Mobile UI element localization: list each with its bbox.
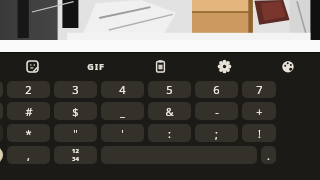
button[interactable]: " xyxy=(54,124,97,142)
button[interactable]: 3 xyxy=(54,81,97,98)
button[interactable]: ! xyxy=(242,124,276,142)
button[interactable]: 2 xyxy=(7,81,50,98)
button[interactable]: ; xyxy=(195,124,238,142)
staticText: _ xyxy=(120,104,125,119)
button[interactable]: 5 xyxy=(148,81,191,98)
staticText: 3 xyxy=(72,82,79,97)
button[interactable]: Language xyxy=(0,146,3,164)
button[interactable]: , xyxy=(7,146,50,164)
button[interactable]: _ xyxy=(101,102,144,120)
staticText: 2 xyxy=(25,82,32,97)
staticText: 34 xyxy=(72,155,79,163)
button[interactable]: 6 xyxy=(195,81,238,98)
button[interactable]: + xyxy=(242,102,276,120)
button[interactable]: $ xyxy=(54,102,97,120)
button[interactable]: 1 xyxy=(0,81,3,98)
staticText: * xyxy=(25,126,32,141)
button[interactable]: Themes xyxy=(256,53,320,79)
button[interactable]: & xyxy=(148,102,191,120)
staticText: 6 xyxy=(213,82,220,97)
staticText: : xyxy=(168,126,171,141)
button[interactable]: Stickers xyxy=(0,53,64,79)
button[interactable]: GIF xyxy=(64,53,128,79)
button[interactable]: Numbers xyxy=(54,146,97,164)
staticText: + xyxy=(256,104,263,119)
button[interactable]: =\< xyxy=(0,124,3,142)
staticText: ! xyxy=(258,126,261,141)
button[interactable]: 4 xyxy=(101,81,144,98)
staticText: $ xyxy=(72,104,79,119)
button[interactable]: ' xyxy=(101,124,144,142)
staticText: 5 xyxy=(166,82,173,97)
button[interactable]: @ xyxy=(0,102,3,120)
button[interactable]: * xyxy=(7,124,50,142)
staticText: . xyxy=(267,148,270,163)
button[interactable]: - xyxy=(195,102,238,120)
staticText: 12 xyxy=(72,147,79,155)
staticText: 4 xyxy=(119,82,126,97)
button[interactable]: . xyxy=(261,146,276,164)
button[interactable]: # xyxy=(7,102,50,120)
staticText: ; xyxy=(215,126,218,141)
staticText: & xyxy=(165,104,174,119)
button[interactable]: Clipboard xyxy=(128,53,192,79)
staticText: , xyxy=(27,148,30,163)
button[interactable]: Settings xyxy=(192,53,256,79)
staticText: 7 xyxy=(256,82,263,97)
button[interactable]: 7 xyxy=(242,81,276,98)
button[interactable]: : xyxy=(148,124,191,142)
staticText: - xyxy=(215,104,219,119)
staticText: GIF xyxy=(87,60,105,72)
staticText: # xyxy=(25,104,33,119)
staticText: ' xyxy=(121,126,124,141)
staticText: " xyxy=(73,126,78,141)
